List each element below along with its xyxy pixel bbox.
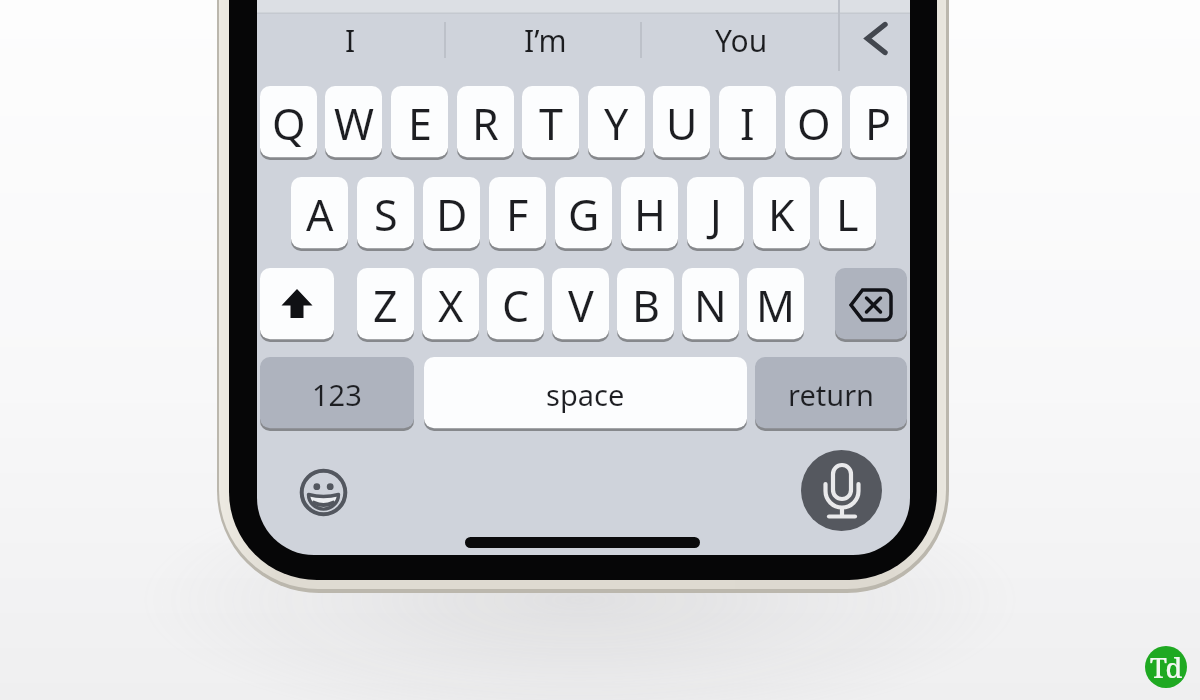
button[interactable]: I’m [435, 0, 655, 80]
staticText: Q [272, 94, 306, 153]
button[interactable]: E [391, 86, 448, 160]
staticText: R [472, 94, 499, 153]
button[interactable]: space [424, 357, 747, 431]
button[interactable] [801, 450, 882, 531]
button[interactable] [260, 268, 334, 342]
button[interactable]: H [621, 177, 678, 251]
staticText: V [568, 276, 594, 335]
staticText: O [797, 94, 831, 153]
button[interactable]: W [325, 86, 382, 160]
button[interactable]: M [747, 268, 804, 342]
button[interactable]: O [785, 86, 842, 160]
staticText: N [694, 276, 727, 335]
button[interactable]: 123 [260, 357, 414, 431]
button[interactable]: I [719, 86, 776, 160]
staticText: F [506, 185, 529, 244]
staticText: I [740, 94, 755, 153]
button[interactable]: V [552, 268, 609, 342]
button[interactable] [835, 268, 907, 342]
button[interactable]: S [357, 177, 414, 251]
staticText: Td [1150, 649, 1183, 686]
button[interactable] [297, 466, 350, 519]
button[interactable]: Z [357, 268, 414, 342]
staticText: U [666, 94, 698, 153]
button[interactable]: K [753, 177, 810, 251]
button[interactable]: D [423, 177, 480, 251]
staticText: P [865, 94, 892, 153]
button[interactable]: G [555, 177, 612, 251]
staticText: I [345, 20, 356, 61]
button[interactable]: Q [260, 86, 317, 160]
staticText: J [710, 185, 722, 244]
staticText: B [632, 276, 660, 335]
staticText: 123 [312, 375, 362, 414]
staticText: G [568, 185, 600, 244]
button[interactable]: I [257, 0, 460, 80]
button[interactable]: B [617, 268, 674, 342]
staticText: D [436, 185, 468, 244]
staticText: L [836, 185, 859, 244]
staticText: M [756, 276, 796, 335]
staticText: H [634, 185, 666, 244]
button[interactable]: X [422, 268, 479, 342]
staticText: return [788, 375, 875, 414]
button[interactable]: N [682, 268, 739, 342]
button[interactable]: You [631, 0, 851, 80]
button[interactable]: return [755, 357, 907, 431]
staticText: You [715, 20, 768, 61]
button[interactable]: C [487, 268, 544, 342]
button[interactable]: R [457, 86, 514, 160]
button[interactable]: U [653, 86, 710, 160]
staticText: space [546, 375, 625, 414]
button[interactable] [855, 14, 889, 66]
button[interactable]: T [522, 86, 579, 160]
button[interactable]: P [850, 86, 907, 160]
button[interactable]: A [291, 177, 348, 251]
button[interactable]: Td [1145, 646, 1187, 688]
staticText: X [438, 276, 464, 335]
staticText: I’m [524, 20, 567, 61]
staticText: Z [373, 276, 398, 335]
button[interactable]: J [687, 177, 744, 251]
staticText: T [539, 94, 563, 153]
staticText: C [502, 276, 530, 335]
staticText: Y [604, 94, 629, 153]
staticText: W [334, 94, 374, 153]
staticText: A [306, 185, 334, 244]
staticText: K [768, 185, 795, 244]
button[interactable]: L [819, 177, 876, 251]
staticText: S [374, 185, 398, 244]
button[interactable]: Y [588, 86, 645, 160]
button[interactable]: F [489, 177, 546, 251]
staticText: E [408, 94, 432, 153]
